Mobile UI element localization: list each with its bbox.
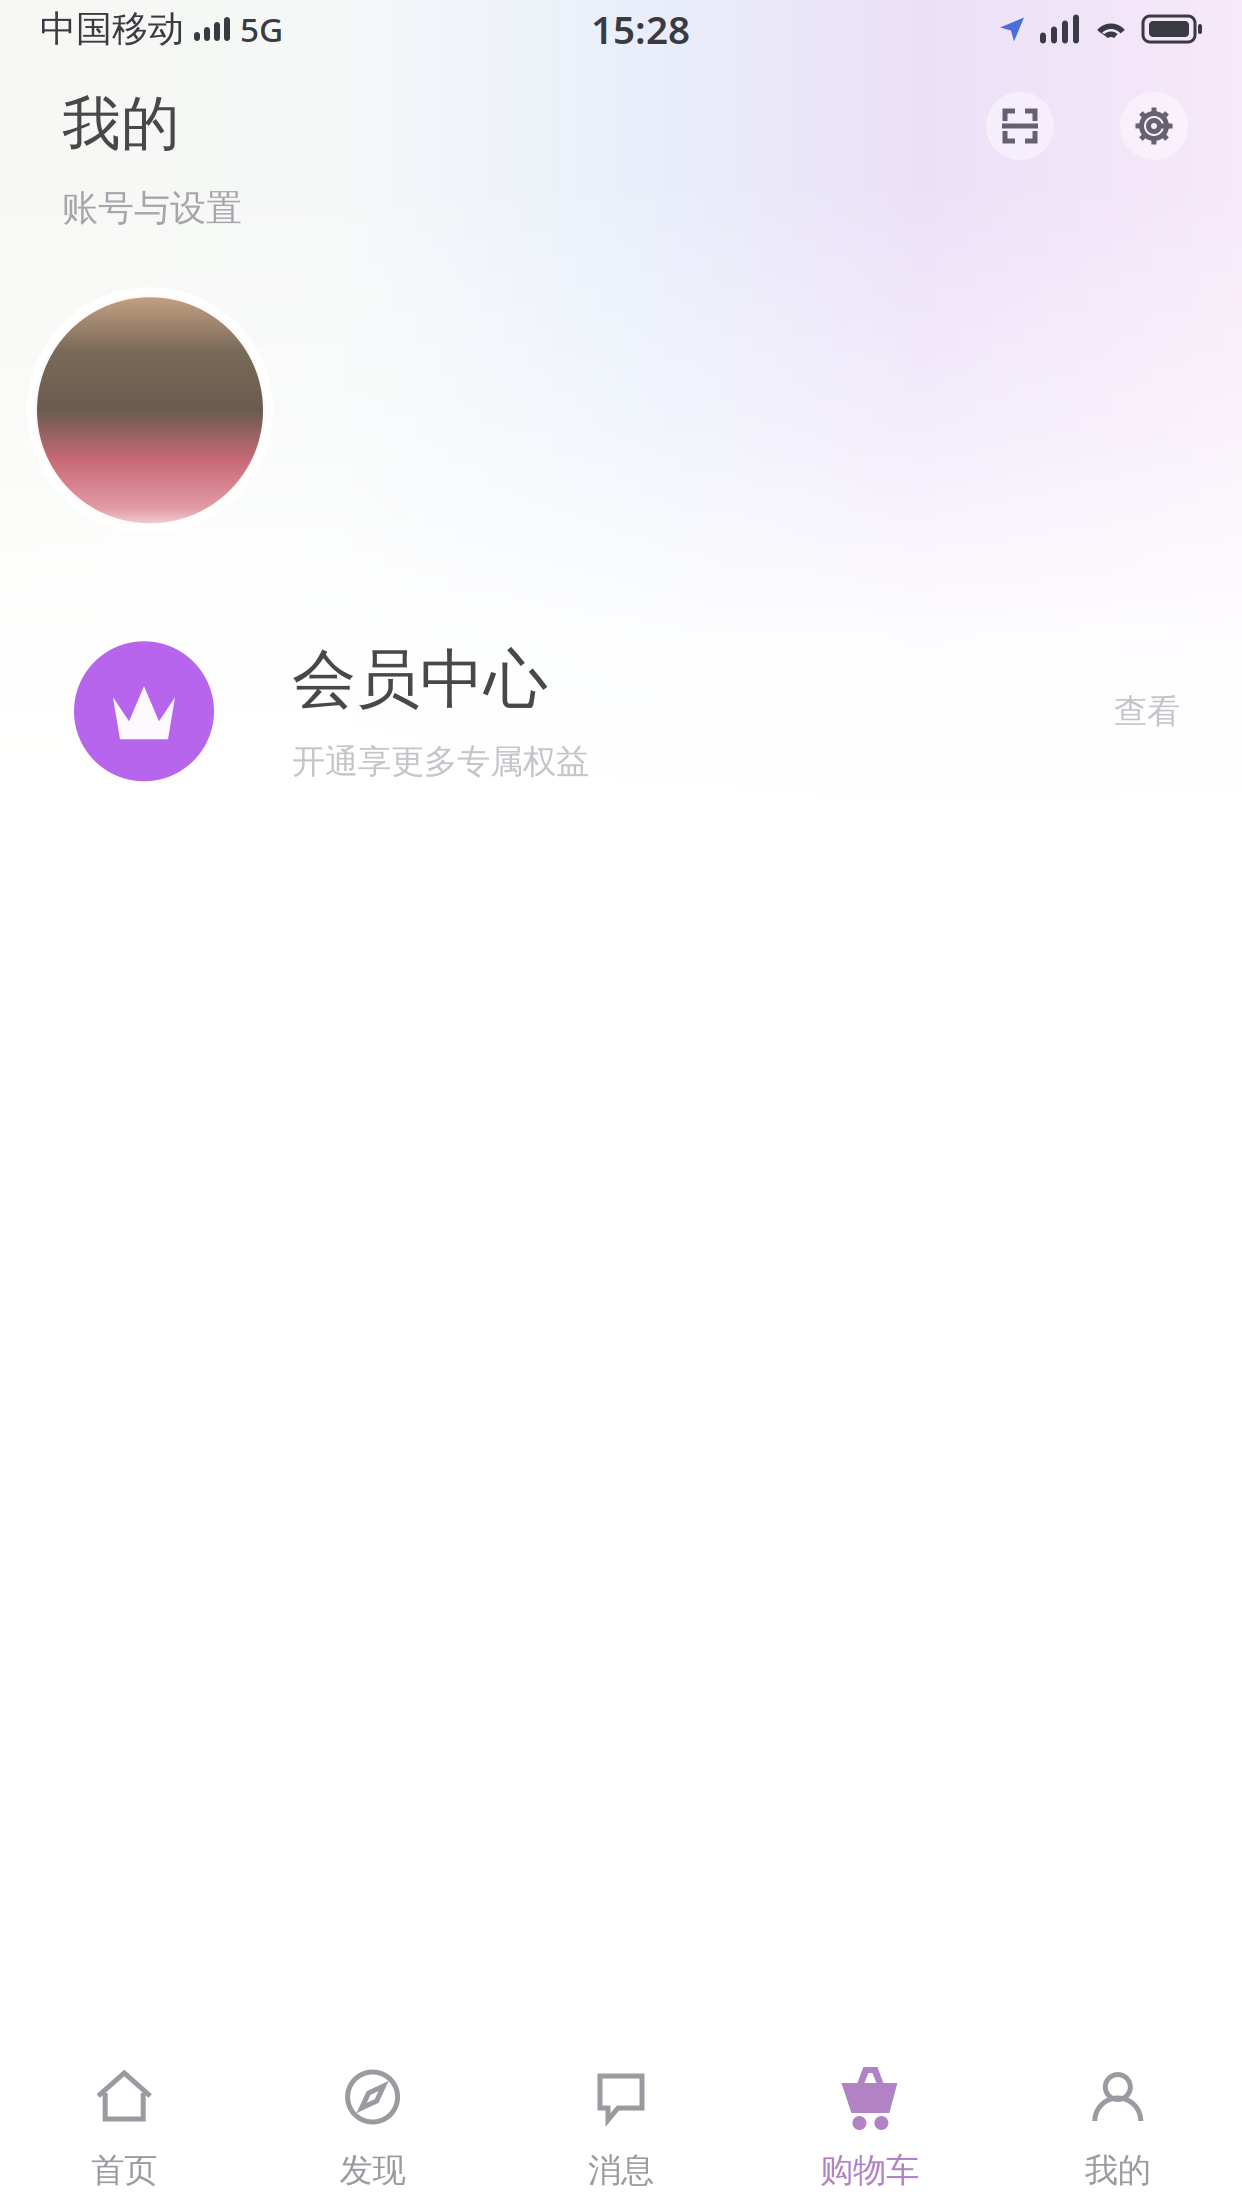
button[interactable]: 会员中心	[0, 616, 1242, 806]
staticText: 会员中心	[292, 640, 548, 719]
button[interactable]: 扫一扫	[986, 92, 1054, 160]
button[interactable]: 用户头像	[32, 292, 268, 528]
staticText: 账号与设置	[62, 186, 242, 230]
staticText: 发现	[340, 2150, 406, 2191]
button[interactable]: 发现	[248, 2032, 497, 2208]
staticText: 查看	[1114, 691, 1180, 732]
staticText: 我的	[1085, 2150, 1151, 2191]
staticText: 5G	[240, 7, 283, 51]
staticText: 开通享更多专属权益	[292, 741, 589, 782]
button[interactable]: 消息	[497, 2032, 745, 2208]
staticText: 购物车	[820, 2150, 919, 2191]
staticText: 中国移动	[40, 7, 184, 51]
button[interactable]: 购物车	[745, 2032, 994, 2208]
button[interactable]: 设置	[1120, 92, 1188, 160]
staticText: 15:28	[591, 3, 690, 55]
staticText: 消息	[588, 2150, 654, 2191]
button[interactable]: 首页	[0, 2032, 248, 2208]
staticText: 首页	[91, 2150, 157, 2191]
button[interactable]: 我的	[994, 2032, 1242, 2208]
staticText: 我的	[62, 88, 180, 160]
